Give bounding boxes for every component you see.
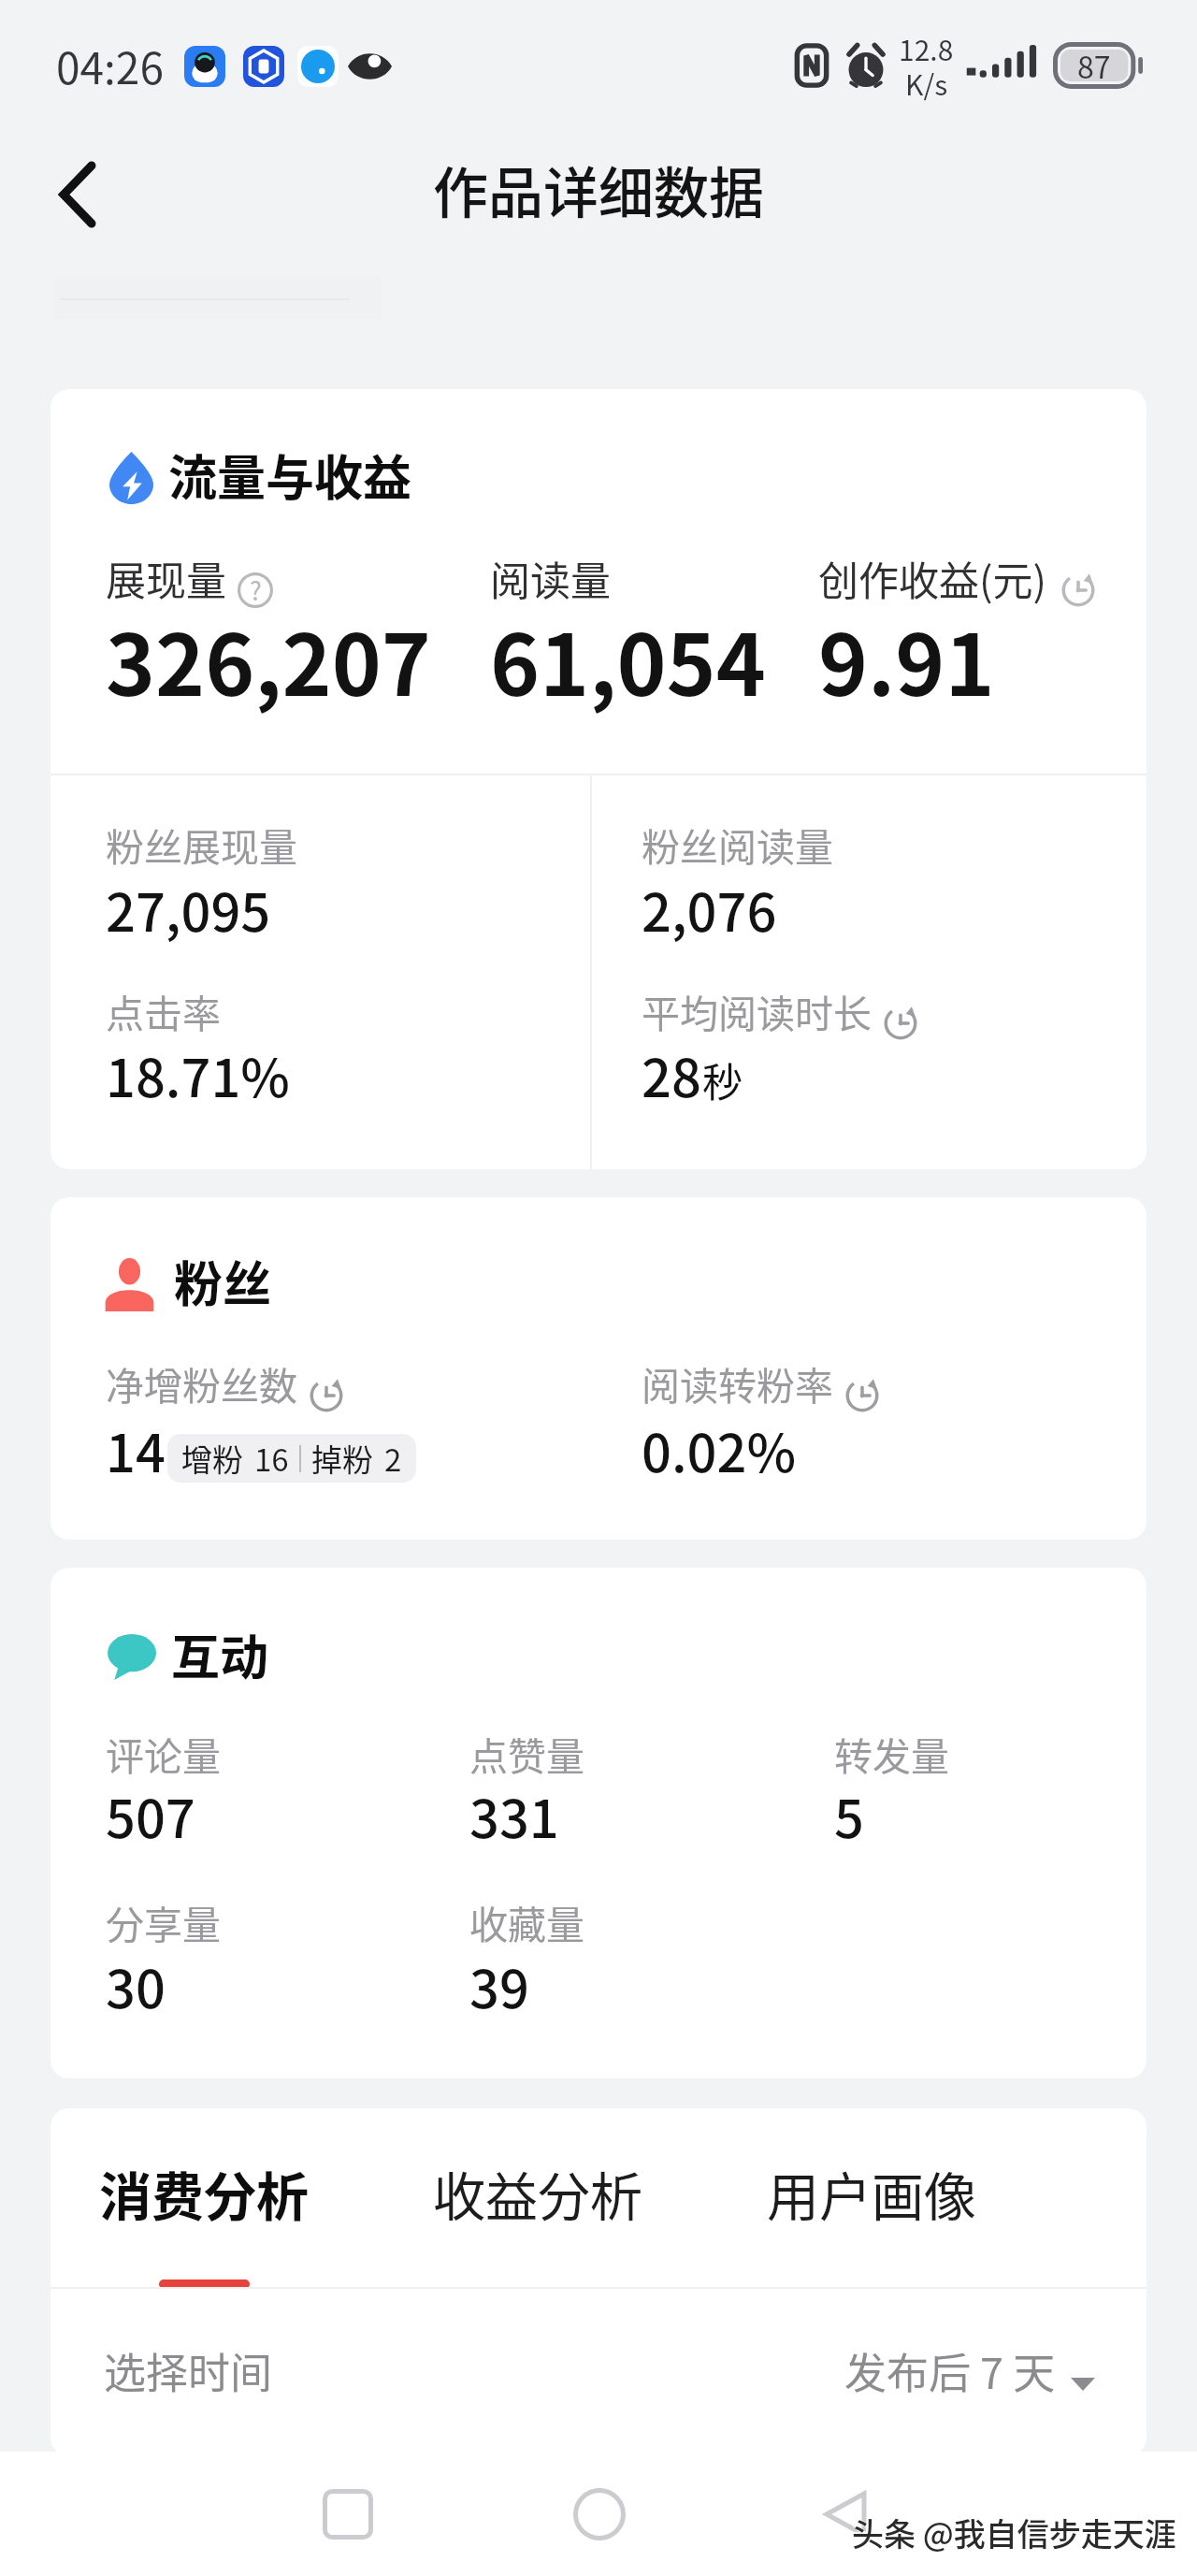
staticText: 507 bbox=[106, 1777, 195, 1853]
staticText: 粉丝展现量 bbox=[106, 817, 297, 872]
staticText: 粉丝阅读量 bbox=[642, 817, 833, 872]
staticText: 16 bbox=[254, 1436, 289, 1481]
staticText: 作品详细数据 bbox=[433, 150, 765, 229]
staticText: 消费分析 bbox=[99, 2155, 309, 2231]
button[interactable]: 消费分析 bbox=[99, 2155, 433, 2231]
staticText: 2,076 bbox=[642, 871, 777, 947]
button[interactable]: Back bbox=[797, 2466, 894, 2563]
staticText: 18.71% bbox=[106, 1036, 290, 1112]
staticText: 阅读量 bbox=[490, 549, 611, 607]
staticText: 收益分析 bbox=[433, 2155, 642, 2231]
staticText: 粉丝 bbox=[174, 1246, 272, 1316]
staticText: 9.91 bbox=[818, 599, 995, 720]
staticText: 头条 @我自信步走天涯 bbox=[850, 2508, 1175, 2554]
staticText: 点击率 bbox=[106, 983, 221, 1038]
staticText: 头条 @我自信步走天涯 bbox=[854, 2511, 1178, 2557]
staticText: 净增粉丝数 bbox=[106, 1355, 297, 1411]
staticText: 发布后 7 天 bbox=[844, 2340, 1056, 2401]
staticText: 14 bbox=[106, 1411, 166, 1487]
button[interactable]: 发布后 7 天 bbox=[844, 2340, 1095, 2401]
button[interactable]: Back bbox=[26, 143, 129, 246]
button[interactable]: Recents bbox=[299, 2466, 397, 2563]
staticText: 平均阅读时长 bbox=[642, 983, 872, 1038]
staticText: 阅读转粉率 bbox=[642, 1355, 833, 1411]
staticText: 掉粉 bbox=[311, 1436, 373, 1481]
staticText: 展现量 bbox=[106, 549, 226, 607]
staticText: 87 bbox=[1077, 44, 1111, 87]
staticText: 0.02% bbox=[642, 1411, 797, 1487]
staticText: 流量与收益 bbox=[168, 440, 412, 510]
button[interactable]: Home bbox=[551, 2466, 648, 2563]
staticText: 增粉 bbox=[181, 1436, 243, 1481]
staticText: 28 bbox=[642, 1036, 701, 1112]
staticText: 用户画像 bbox=[767, 2155, 976, 2231]
staticText: 创作收益(元) bbox=[818, 549, 1047, 607]
staticText: 点赞量 bbox=[469, 1726, 584, 1781]
staticText: 秒 bbox=[702, 1050, 743, 1108]
staticText: 326,207 bbox=[106, 599, 431, 720]
staticText: ? bbox=[250, 572, 262, 607]
staticText: 选择时间 bbox=[104, 2340, 273, 2401]
button[interactable]: 用户画像 bbox=[767, 2155, 976, 2231]
staticText: 331 bbox=[469, 1777, 559, 1853]
staticText: 61,054 bbox=[490, 599, 766, 720]
staticText: 收藏量 bbox=[469, 1894, 584, 1949]
staticText: 评论量 bbox=[106, 1726, 221, 1781]
staticText: 04:26 bbox=[56, 35, 164, 97]
staticText: 5 bbox=[834, 1777, 864, 1853]
staticText: 27,095 bbox=[106, 871, 271, 947]
staticText: 2 bbox=[384, 1436, 402, 1481]
staticText: 分享量 bbox=[106, 1894, 221, 1949]
staticText: 39 bbox=[469, 1947, 529, 2023]
staticText: 12.8 bbox=[899, 28, 954, 68]
staticText: K/s bbox=[905, 63, 948, 103]
staticText: 互动 bbox=[171, 1619, 269, 1689]
staticText: 30 bbox=[106, 1947, 166, 2023]
staticText: 转发量 bbox=[834, 1726, 949, 1781]
staticText: 头条 @我自信步走天涯 bbox=[852, 2510, 1176, 2555]
button[interactable]: 收益分析 bbox=[433, 2155, 767, 2231]
